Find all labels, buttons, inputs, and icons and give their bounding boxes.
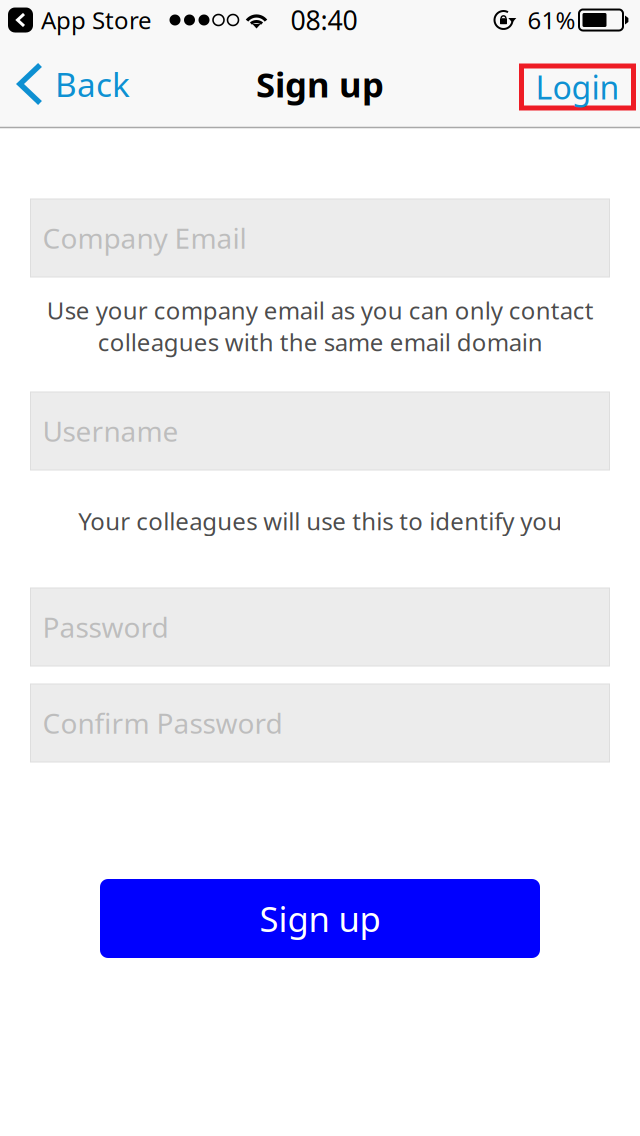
staticText: Company Email	[42, 219, 246, 257]
button[interactable]: Back	[17, 56, 147, 112]
button[interactable]: Username	[30, 392, 609, 470]
staticText: Username	[42, 412, 178, 450]
staticText: Password	[42, 608, 168, 646]
staticText: Sign up	[256, 61, 384, 107]
button[interactable]: Confirm Password	[30, 684, 609, 762]
staticText: Your colleagues will use this to identif…	[78, 505, 562, 537]
staticText: 61%	[527, 4, 575, 36]
button[interactable]: Sign up	[100, 879, 540, 958]
staticText: Back	[55, 62, 130, 106]
staticText: Confirm Password	[42, 704, 282, 742]
button[interactable]: Password	[30, 588, 609, 666]
button[interactable]: Login	[519, 63, 636, 110]
button[interactable]: Return to App Store	[8, 3, 160, 37]
staticText: Login	[535, 66, 619, 108]
staticText: App Store	[41, 4, 152, 36]
staticText: Sign up	[259, 895, 380, 941]
button[interactable]: Company Email	[30, 199, 609, 277]
staticText: 08:40	[290, 2, 357, 38]
staticText: Use your company email as you can only c…	[46, 294, 593, 358]
